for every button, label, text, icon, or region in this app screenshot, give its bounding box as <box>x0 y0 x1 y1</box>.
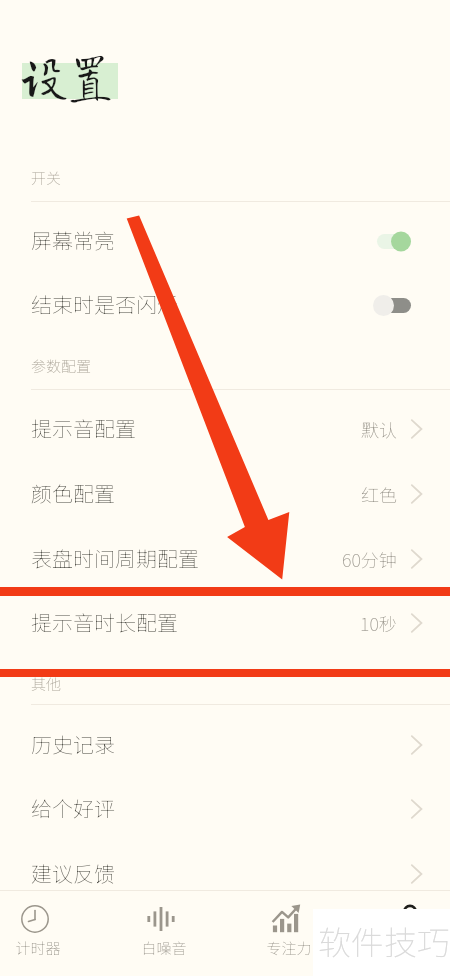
button[interactable]: 历史记录 <box>0 713 450 777</box>
button[interactable]: 颜色配置 <box>0 462 450 526</box>
staticText: 设置 <box>21 47 114 103</box>
button[interactable]: 给个好评 <box>0 777 450 841</box>
button[interactable]: 提示音时长配置 <box>0 591 450 655</box>
staticText: 提示音时长配置 <box>31 607 178 637</box>
button[interactable]: 建议反馈 <box>0 842 450 906</box>
staticText: 表盘时间周期配置 <box>31 543 199 573</box>
staticText: 软件技巧 <box>318 917 450 965</box>
staticText: 10秒 <box>360 610 397 636</box>
staticText: 白噪音 <box>109 937 219 959</box>
staticText: 屏幕常亮 <box>31 225 115 255</box>
staticText: 我的 <box>360 937 450 959</box>
staticText: 默认 <box>361 416 397 442</box>
staticText: 计时器 <box>0 937 93 959</box>
staticText: 红色 <box>361 481 397 507</box>
staticText: 其他 <box>31 673 62 695</box>
button[interactable]: 提示音配置 <box>0 397 450 461</box>
staticText: 参数配置 <box>31 355 92 377</box>
staticText: 结束时是否闪烁 <box>31 289 178 319</box>
staticText: 60分钟 <box>342 546 397 572</box>
staticText: 建议反馈 <box>31 858 115 888</box>
staticText: 专注力 <box>234 937 344 959</box>
staticText: 提示音配置 <box>31 413 136 443</box>
staticText: 历史记录 <box>31 729 115 759</box>
staticText: 给个好评 <box>31 793 115 823</box>
other: 屏幕常亮 on <box>373 231 411 252</box>
button[interactable]: 结束时是否闪烁 <box>0 273 450 337</box>
button[interactable]: 表盘时间周期配置 <box>0 527 450 591</box>
staticText: 开关 <box>31 167 62 189</box>
staticText: 颜色配置 <box>31 478 115 508</box>
button[interactable]: 屏幕常亮 <box>0 209 450 273</box>
other: 结束时是否闪烁 off <box>373 295 411 316</box>
button[interactable]: 计时器 <box>0 890 93 976</box>
button[interactable]: 专注力 <box>234 890 344 976</box>
button[interactable]: 白噪音 <box>109 890 219 976</box>
button[interactable]: 我的 <box>360 890 450 976</box>
